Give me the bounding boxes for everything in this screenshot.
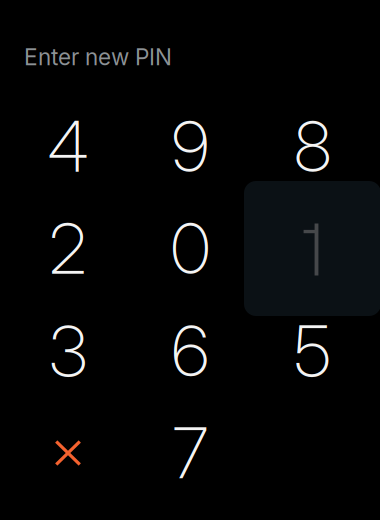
staticText: 4: [47, 105, 88, 188]
button[interactable]: 8: [244, 79, 380, 214]
button[interactable]: 0: [122, 181, 259, 316]
button[interactable]: 4: [0, 79, 136, 214]
staticText: 5: [294, 309, 331, 393]
staticText: 8: [294, 105, 331, 188]
staticText: Enter new PIN: [24, 43, 172, 71]
staticText: 3: [49, 309, 87, 393]
button[interactable]: 9: [122, 79, 259, 214]
button[interactable]: 3: [0, 283, 136, 418]
button[interactable]: 2: [0, 181, 136, 316]
button[interactable]: 7: [122, 385, 259, 520]
button[interactable]: 6: [122, 283, 259, 418]
button[interactable]: Delete: [0, 385, 136, 520]
staticText: 7: [172, 411, 208, 495]
button[interactable]: 1: [244, 181, 380, 316]
staticText: 6: [171, 309, 209, 393]
staticText: 9: [171, 105, 209, 188]
button[interactable]: 5: [244, 283, 380, 418]
staticText: 0: [170, 207, 210, 290]
staticText: 2: [49, 207, 87, 290]
